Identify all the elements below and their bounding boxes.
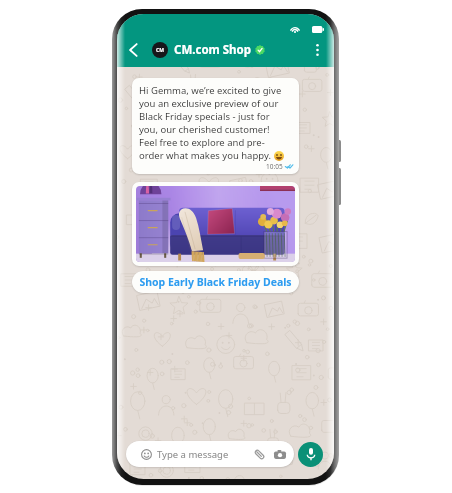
- staticText: Feel free to explore and pre-: [139, 136, 265, 149]
- staticText: Type a message: [157, 448, 229, 461]
- button[interactable]: Black Friday living room offer image: [132, 182, 299, 266]
- staticText: Black Friday specials - just for: [139, 110, 270, 123]
- staticText: you an exclusive preview of our: [139, 97, 279, 110]
- staticText: order what makes you happy.: [139, 149, 274, 162]
- button[interactable]: Type a message: [126, 441, 294, 467]
- staticText: Hi Gemma, we’re excited to give: [139, 84, 282, 97]
- staticText: 10:05: [266, 162, 283, 171]
- button[interactable]: CM: [152, 42, 265, 58]
- button[interactable]: Voice message: [298, 442, 323, 467]
- staticText: CM.com Shop: [174, 42, 252, 58]
- staticText: CM: [156, 47, 164, 54]
- button[interactable]: Back: [123, 40, 143, 60]
- button[interactable]: Camera: [273, 448, 286, 461]
- staticText: you, our cherished customer!: [139, 123, 270, 136]
- button[interactable]: Attach file: [252, 447, 266, 461]
- button[interactable]: Shop Early Black Friday Deals: [132, 271, 299, 293]
- staticText: Shop Early Black Friday Deals: [139, 275, 292, 289]
- button[interactable]: More options: [308, 41, 326, 59]
